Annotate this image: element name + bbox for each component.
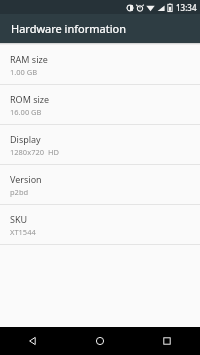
button[interactable]: Version [0, 165, 200, 205]
staticText: Version [10, 173, 42, 185]
staticText: Display [10, 133, 41, 145]
button[interactable]: Recent apps [133, 327, 200, 355]
staticText: 1280x720 HD [10, 147, 59, 157]
button[interactable]: Home [66, 327, 133, 355]
staticText: ROM size [10, 93, 50, 105]
button[interactable]: ROM size [0, 85, 200, 125]
staticText: p2bd [10, 187, 29, 197]
staticText: Hardware information [11, 21, 126, 36]
staticText: SKU [10, 213, 28, 225]
staticText: RAM size [10, 53, 48, 65]
staticText: 16.00 GB [10, 107, 42, 117]
staticText: 1.00 GB [10, 67, 38, 77]
staticText: XT1544 [10, 227, 36, 237]
button[interactable]: Back [0, 327, 66, 355]
button[interactable]: SKU [0, 205, 200, 245]
button[interactable]: Display [0, 125, 200, 165]
button[interactable]: RAM size [0, 45, 200, 85]
staticText: 13:34 [176, 2, 197, 13]
